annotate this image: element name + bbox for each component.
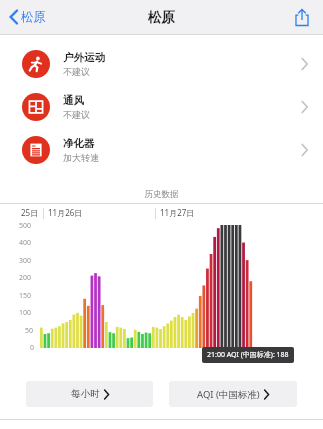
staticText: 11月26日 xyxy=(48,207,83,218)
staticText: 不建议 xyxy=(63,109,90,120)
staticText: 松原 xyxy=(148,9,175,26)
button[interactable]: 松原 xyxy=(6,4,50,30)
staticText: 加大转速 xyxy=(63,152,99,163)
staticText: 户外运动 xyxy=(63,51,105,64)
button[interactable]: 净化器 xyxy=(0,128,323,171)
staticText: 0 xyxy=(30,343,35,353)
staticText: 净化器 xyxy=(63,137,95,150)
button[interactable]: AQI (中国标准) xyxy=(169,381,297,407)
button[interactable]: Share xyxy=(292,6,312,29)
staticText: 21:00 AQI (中国标准): 188 xyxy=(207,350,289,360)
staticText: AQI (中国标准) xyxy=(197,388,260,401)
staticText: 不建议 xyxy=(63,66,90,77)
staticText: 150 xyxy=(19,291,32,301)
staticText: 400 xyxy=(19,238,32,248)
button[interactable]: 通风 xyxy=(0,85,323,128)
staticText: 松原 xyxy=(21,9,46,25)
staticText: 11月27日 xyxy=(160,207,195,218)
button[interactable]: 户外运动 xyxy=(0,42,323,85)
staticText: 50 xyxy=(25,326,34,336)
staticText: 每小时 xyxy=(71,388,100,400)
staticText: 200 xyxy=(19,273,32,283)
staticText: 历史数据 xyxy=(0,189,323,200)
button[interactable]: 每小时 xyxy=(26,381,153,407)
staticText: 300 xyxy=(19,256,32,266)
staticText: 25日 xyxy=(21,207,39,218)
staticText: 通风 xyxy=(63,94,84,107)
staticText: 100 xyxy=(19,308,32,318)
staticText: 500 xyxy=(19,221,32,231)
